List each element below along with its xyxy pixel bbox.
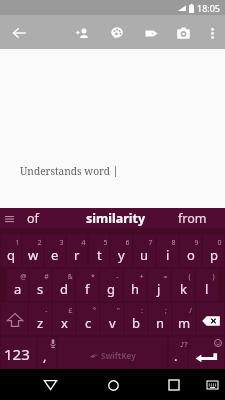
- button[interactable]: Backspace: [197, 303, 224, 335]
- button[interactable]: *: [76, 269, 98, 301]
- button[interactable]: Add person: [67, 15, 97, 49]
- staticText: e: [51, 246, 59, 264]
- staticText: ): [212, 272, 215, 282]
- staticText: &: [67, 272, 73, 282]
- staticText: q: [7, 246, 15, 264]
- button[interactable]: (: [172, 269, 194, 301]
- button[interactable]: Back: [4, 15, 34, 49]
- button[interactable]: More options: [197, 15, 225, 49]
- staticText: Understands word: [20, 164, 111, 178]
- button[interactable]: Camera: [168, 15, 198, 49]
- staticText: l: [205, 280, 209, 298]
- staticText: (: [188, 272, 191, 282]
- staticText: j: [157, 280, 161, 298]
- button[interactable]: #: [30, 269, 51, 301]
- button[interactable]: 2: [23, 235, 43, 267]
- staticText: v: [109, 314, 116, 332]
- staticText: 7: [148, 238, 153, 248]
- staticText: 18:05: [197, 2, 221, 14]
- button[interactable]: ): [196, 269, 218, 301]
- staticText: 123: [4, 344, 30, 364]
- button[interactable]: /: [173, 303, 195, 335]
- button[interactable]: Home: [98, 370, 128, 400]
- staticText: a: [14, 280, 22, 298]
- button[interactable]: +: [124, 269, 146, 301]
- button[interactable]: 9: [180, 235, 201, 267]
- button[interactable]: £: [53, 303, 75, 335]
- staticText: ♪?: [180, 340, 188, 350]
- staticText: g: [107, 280, 115, 298]
- staticText: 4: [81, 238, 86, 248]
- button[interactable]: Period, punctuation: [169, 337, 187, 368]
- staticText: 0: [217, 238, 222, 248]
- button[interactable]: Recent apps: [159, 370, 189, 400]
- button[interactable]: similarity: [81, 208, 151, 228]
- staticText: f: [85, 280, 90, 298]
- staticText: 2: [37, 238, 42, 248]
- staticText: c: [85, 314, 92, 332]
- staticText: b: [132, 314, 140, 332]
- staticText: #: [44, 272, 49, 282]
- staticText: °: [93, 306, 96, 316]
- button[interactable]: 5: [89, 235, 109, 267]
- button[interactable]: -: [100, 269, 122, 301]
- staticText: m: [178, 314, 191, 332]
- staticText: y: [118, 246, 125, 264]
- staticText: t: [97, 246, 102, 264]
- staticText: s: [37, 280, 44, 298]
- staticText: 8: [171, 238, 176, 248]
- staticText: .: [174, 347, 178, 365]
- staticText: p: [210, 246, 218, 264]
- button[interactable]: Space: [58, 337, 167, 368]
- staticText: *: [91, 272, 95, 282]
- staticText: +: [139, 272, 144, 282]
- staticText: -: [116, 272, 119, 282]
- button[interactable]: Enter: [189, 337, 224, 368]
- button[interactable]: 6: [111, 235, 132, 267]
- button[interactable]: Change colour: [102, 15, 132, 49]
- button[interactable]: 8: [157, 235, 178, 267]
- staticText: =: [163, 272, 168, 282]
- staticText: ,: [43, 347, 47, 365]
- staticText: -: [45, 306, 48, 316]
- button[interactable]: 0: [203, 235, 224, 267]
- staticText: 6: [125, 238, 130, 248]
- staticText: z: [37, 314, 44, 332]
- staticText: u: [140, 246, 149, 264]
- button[interactable]: 4: [67, 235, 87, 267]
- staticText: SwiftKey: [101, 350, 136, 361]
- button[interactable]: :: [125, 303, 147, 335]
- staticText: x: [61, 314, 68, 332]
- button[interactable]: from: [167, 208, 218, 228]
- button[interactable]: ;: [149, 303, 171, 335]
- staticText: of: [27, 210, 39, 227]
- button[interactable]: Hide keyboard: [200, 373, 224, 397]
- staticText: 5: [103, 238, 108, 248]
- staticText: 1: [15, 238, 20, 248]
- staticText: :: [141, 306, 143, 316]
- staticText: o: [187, 246, 195, 264]
- button[interactable]: @: [7, 269, 28, 301]
- staticText: i: [166, 246, 170, 264]
- button[interactable]: °: [77, 303, 99, 335]
- staticText: /: [189, 306, 192, 316]
- button[interactable]: Menu: [0, 209, 18, 227]
- staticText: £: [68, 306, 73, 316]
- button[interactable]: Back: [35, 370, 65, 400]
- button[interactable]: Comma, voice input: [38, 337, 56, 368]
- button[interactable]: 123: [1, 337, 36, 368]
- button[interactable]: 7: [134, 235, 155, 267]
- staticText: ;: [165, 306, 167, 316]
- button[interactable]: ": [101, 303, 123, 335]
- button[interactable]: 3: [45, 235, 65, 267]
- button[interactable]: -: [29, 303, 51, 335]
- button[interactable]: Shift: [1, 303, 27, 335]
- staticText: 9: [194, 238, 199, 248]
- button[interactable]: 1: [1, 235, 21, 267]
- button[interactable]: &: [53, 269, 74, 301]
- button[interactable]: of: [18, 208, 48, 228]
- staticText: ": [117, 306, 120, 316]
- button[interactable]: Label: [136, 15, 166, 49]
- button[interactable]: =: [148, 269, 170, 301]
- staticText: n: [156, 314, 165, 332]
